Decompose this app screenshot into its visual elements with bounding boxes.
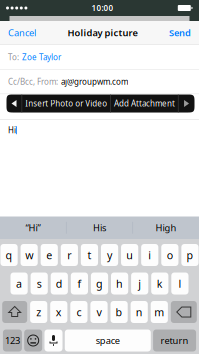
staticText: q — [6, 248, 13, 262]
staticText: return — [161, 334, 189, 347]
button[interactable]: Insert Photo or Video — [22, 94, 110, 112]
staticText: l — [178, 276, 181, 291]
staticText: k — [157, 276, 163, 291]
staticText: i — [148, 248, 151, 262]
button[interactable]: u — [121, 244, 138, 266]
button[interactable]: Dictate — [44, 329, 62, 351]
staticText: 123 — [5, 334, 20, 347]
button[interactable]: o — [161, 244, 178, 266]
staticText: h — [116, 276, 123, 291]
staticText: Hi — [8, 125, 16, 135]
staticText: Send — [169, 27, 191, 39]
button[interactable]: To: — [0, 45, 199, 69]
staticText: f — [77, 276, 81, 291]
button[interactable]: z — [30, 301, 47, 323]
button[interactable]: 123 — [3, 329, 22, 351]
staticText: y — [107, 248, 112, 262]
button[interactable] — [0, 94, 199, 119]
staticText: j — [138, 276, 141, 291]
button[interactable]: n — [131, 301, 148, 323]
button[interactable]: h — [111, 272, 128, 294]
staticText: t — [87, 248, 91, 262]
staticText: d — [56, 276, 63, 291]
staticText: “Hi” — [25, 222, 40, 234]
button[interactable]: Cc/Bcc, From: — [0, 70, 199, 94]
button[interactable]: x — [50, 301, 67, 323]
button[interactable]: w — [21, 244, 38, 266]
button[interactable]: Next — [179, 94, 194, 112]
button[interactable]: g — [91, 272, 108, 294]
staticText: space — [96, 334, 120, 347]
staticText: Insert Photo or Video — [25, 98, 107, 109]
staticText: m — [154, 305, 164, 319]
staticText: g — [96, 276, 103, 291]
staticText: High — [155, 222, 176, 234]
staticText: w — [25, 248, 33, 262]
button[interactable]: i — [141, 244, 158, 266]
button[interactable]: f — [71, 272, 88, 294]
button[interactable]: space — [65, 329, 151, 351]
button[interactable]: r — [61, 244, 78, 266]
staticText: e — [46, 248, 52, 262]
staticText: To: — [8, 52, 19, 62]
button[interactable]: j — [131, 272, 148, 294]
button[interactable]: l — [171, 272, 188, 294]
staticText: Cc/Bcc, From: — [8, 76, 58, 87]
button[interactable]: return — [153, 329, 196, 351]
staticText: Holiday picture — [67, 27, 137, 39]
button[interactable]: Cancel — [3, 23, 41, 43]
button[interactable]: a — [10, 272, 28, 294]
button[interactable]: y — [101, 244, 118, 266]
staticText: r — [67, 248, 71, 262]
button[interactable]: q — [0, 244, 18, 266]
staticText: 10:00 — [92, 3, 114, 13]
button[interactable]: e — [41, 244, 58, 266]
staticText: a — [16, 276, 22, 291]
staticText: n — [136, 305, 143, 319]
button[interactable]: Previous — [6, 94, 21, 112]
staticText: Zoe Taylor — [22, 52, 61, 62]
staticText: c — [76, 305, 81, 319]
button[interactable]: Emoji — [24, 329, 42, 351]
button[interactable]: b — [110, 301, 128, 323]
staticText: s — [37, 276, 42, 291]
button[interactable]: d — [51, 272, 68, 294]
button[interactable]: v — [90, 301, 108, 323]
button[interactable]: p — [181, 244, 198, 266]
button[interactable]: His — [66, 216, 132, 239]
button[interactable]: Shift — [2, 301, 27, 323]
button[interactable]: m — [151, 301, 168, 323]
staticText: p — [186, 248, 193, 262]
button[interactable]: Add Attachment — [111, 94, 178, 112]
staticText: aj@groupwm.com — [61, 76, 128, 87]
staticText: Add Attachment — [114, 98, 175, 109]
staticText: b — [116, 305, 123, 319]
staticText: z — [36, 305, 41, 319]
staticText: u — [126, 248, 133, 262]
staticText: Cancel — [8, 27, 36, 39]
button[interactable]: High — [133, 216, 199, 239]
staticText: o — [167, 248, 173, 262]
button[interactable]: s — [31, 272, 48, 294]
button[interactable]: t — [81, 244, 98, 266]
staticText: His — [93, 222, 106, 234]
button[interactable]: c — [70, 301, 87, 323]
button[interactable]: Send — [164, 23, 196, 43]
button[interactable]: “Hi” — [0, 216, 66, 239]
staticText: x — [56, 305, 62, 319]
button[interactable]: k — [151, 272, 168, 294]
button[interactable]: Delete — [171, 301, 197, 323]
staticText: v — [96, 305, 101, 319]
